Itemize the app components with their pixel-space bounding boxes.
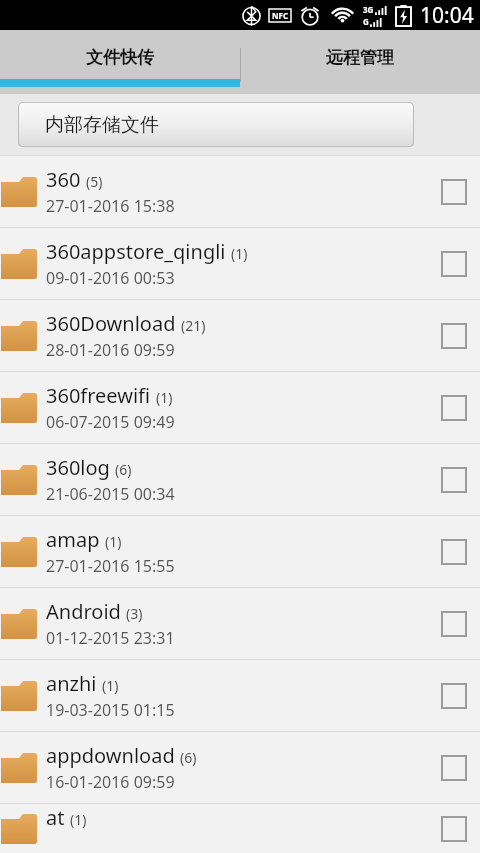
button[interactable]: Select appdownload: [428, 732, 480, 803]
staticText: 内部存储文件: [45, 113, 159, 137]
button[interactable]: 360Download: [0, 300, 480, 371]
staticText: 360freewifi: [46, 382, 151, 409]
button[interactable]: 360appstore_qingli: [0, 228, 480, 299]
staticText: (1): [156, 388, 173, 407]
button[interactable]: 360freewifi: [0, 372, 480, 443]
staticText: 19-03-2015 01:15: [46, 699, 175, 721]
staticText: (5): [86, 172, 103, 191]
button[interactable]: Select 360Download: [428, 300, 480, 371]
staticText: 文件快传: [86, 47, 154, 68]
staticText: 09-01-2016 00:53: [46, 267, 175, 289]
button[interactable]: Select 360freewifi: [428, 372, 480, 443]
button[interactable]: Select Android: [428, 588, 480, 659]
staticText: 远程管理: [326, 47, 394, 68]
staticText: G: [363, 16, 369, 27]
staticText: 360log: [46, 454, 110, 481]
button[interactable]: Select amap: [428, 516, 480, 587]
staticText: (1): [231, 244, 248, 263]
button[interactable]: 内部存储文件: [18, 102, 414, 147]
button[interactable]: at: [0, 804, 480, 853]
button[interactable]: amap: [0, 516, 480, 587]
staticText: 3G: [363, 4, 374, 15]
button[interactable]: anzhi: [0, 660, 480, 731]
staticText: 27-01-2016 15:38: [46, 195, 175, 217]
button[interactable]: appdownload: [0, 732, 480, 803]
staticText: 10:04: [420, 1, 474, 30]
staticText: anzhi: [46, 670, 97, 697]
staticText: 27-01-2016 15:55: [46, 555, 175, 577]
staticText: Android: [46, 598, 121, 625]
button[interactable]: 文件快传: [0, 30, 240, 94]
button[interactable]: 360: [0, 156, 480, 227]
staticText: 360Download: [46, 310, 176, 337]
staticText: 16-01-2016 09:59: [46, 771, 175, 793]
staticText: 360: [46, 166, 81, 193]
staticText: 360appstore_qingli: [46, 238, 226, 265]
button[interactable]: Select anzhi: [428, 660, 480, 731]
staticText: 01-12-2015 23:31: [46, 627, 175, 649]
staticText: (6): [115, 460, 132, 479]
staticText: amap: [46, 526, 100, 553]
staticText: (21): [181, 316, 206, 335]
staticText: (1): [105, 532, 122, 551]
button[interactable]: Select 360appstore_qingli: [428, 228, 480, 299]
button[interactable]: Select 360: [428, 156, 480, 227]
staticText: 28-01-2016 09:59: [46, 339, 175, 361]
button[interactable]: Android: [0, 588, 480, 659]
button[interactable]: Select at: [428, 804, 480, 853]
staticText: 06-07-2015 09:49: [46, 411, 175, 433]
staticText: (6): [180, 748, 197, 767]
staticText: NFC: [272, 10, 289, 21]
button[interactable]: 360log: [0, 444, 480, 515]
button[interactable]: 远程管理: [240, 30, 480, 94]
staticText: appdownload: [46, 742, 175, 769]
staticText: (1): [102, 676, 119, 695]
staticText: at: [46, 804, 65, 831]
staticText: (3): [126, 604, 143, 623]
staticText: 21-06-2015 00:34: [46, 483, 175, 505]
button[interactable]: Select 360log: [428, 444, 480, 515]
staticText: (1): [70, 810, 87, 829]
